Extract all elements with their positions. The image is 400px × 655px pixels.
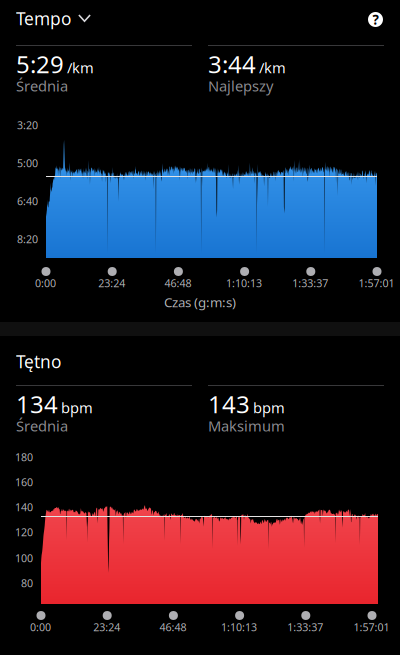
staticText: 1:33:37 xyxy=(292,276,328,290)
staticText: 23:24 xyxy=(93,620,120,634)
staticText: 5:29 xyxy=(16,48,64,80)
staticText: bpm xyxy=(253,398,285,417)
staticText: 1:10:13 xyxy=(221,620,257,634)
staticText: 23:24 xyxy=(98,276,125,290)
staticText: Tempo xyxy=(16,7,71,30)
staticText: 143 xyxy=(208,388,250,420)
button[interactable]: Tętno xyxy=(16,350,61,373)
button[interactable]: Tempo xyxy=(16,7,91,30)
staticText: Najlepszy xyxy=(208,76,273,95)
staticText: 3:44 xyxy=(208,48,256,80)
staticText: ? xyxy=(372,11,378,28)
staticText: 134 xyxy=(16,388,58,420)
staticText: Tętno xyxy=(16,350,61,373)
staticText: 46:48 xyxy=(164,276,191,290)
staticText: Średnia xyxy=(16,76,68,95)
staticText: 8:20 xyxy=(17,232,38,246)
staticText: 5:00 xyxy=(17,156,38,170)
staticText: 140 xyxy=(15,500,33,514)
staticText: 160 xyxy=(15,475,33,489)
staticText: 180 xyxy=(15,450,33,464)
staticText: 1:57:01 xyxy=(353,620,389,634)
staticText: 1:33:37 xyxy=(287,620,323,634)
staticText: 46:48 xyxy=(159,620,186,634)
staticText: 6:40 xyxy=(17,194,38,208)
button[interactable]: Help xyxy=(368,12,383,27)
staticText: /km xyxy=(67,58,94,77)
staticText: Czas (g:m:s) xyxy=(164,293,236,311)
staticText: 80 xyxy=(21,576,33,590)
staticText: 0:00 xyxy=(35,276,56,290)
staticText: bpm xyxy=(61,398,93,417)
staticText: 100 xyxy=(15,551,33,565)
staticText: Średnia xyxy=(16,416,68,435)
staticText: /km xyxy=(259,58,286,77)
staticText: 120 xyxy=(15,525,33,539)
staticText: 1:57:01 xyxy=(358,276,394,290)
staticText: 3:20 xyxy=(17,118,38,132)
staticText: 0:00 xyxy=(30,620,51,634)
staticText: Maksimum xyxy=(208,416,285,435)
staticText: 1:10:13 xyxy=(226,276,262,290)
